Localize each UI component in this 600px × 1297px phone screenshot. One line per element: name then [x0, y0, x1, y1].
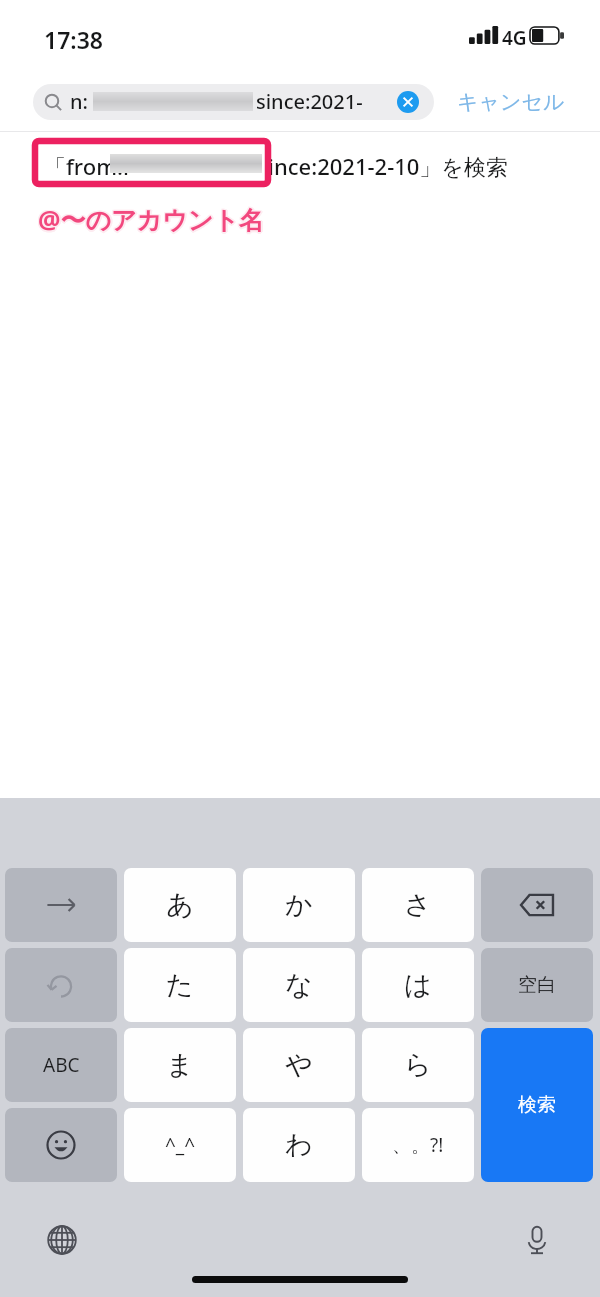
staticText: ら [404, 1048, 432, 1082]
button[interactable]: あ [124, 868, 236, 942]
staticText: @〜のアカウント名 [37, 201, 263, 235]
button[interactable]: ら [362, 1028, 474, 1102]
button[interactable]: ABC [5, 1028, 117, 1102]
staticText: た [166, 968, 194, 1002]
staticText: 検索 [518, 1093, 556, 1117]
button[interactable]: た [124, 948, 236, 1022]
staticText: @〜のアカウント名 [38, 202, 264, 236]
button[interactable]: 「from:r [0, 132, 600, 194]
button[interactable]: ま [124, 1028, 236, 1102]
staticText: @〜のアカウント名 [39, 203, 265, 237]
staticText: @〜のアカウント名 [38, 201, 264, 235]
button[interactable]: Delete [481, 868, 593, 942]
button[interactable]: Undo [5, 948, 117, 1022]
staticText: since:2021- [256, 88, 363, 115]
button[interactable]: か [243, 868, 355, 942]
staticText: @〜のアカウント名 [40, 202, 266, 236]
button[interactable]: キャンセル [445, 84, 585, 120]
staticText: 4G [502, 25, 527, 51]
staticText: @〜のアカウント名 [39, 201, 265, 235]
staticText: か [285, 888, 313, 922]
button[interactable]: 検索 [481, 1028, 593, 1182]
button[interactable]: Clear text [397, 91, 419, 113]
staticText: ince:2021-2-10」を検索 [268, 151, 508, 181]
button[interactable]: 空白 [481, 948, 593, 1022]
button[interactable]: Emoji [5, 1108, 117, 1182]
button[interactable]: な [243, 948, 355, 1022]
staticText: あ [166, 888, 194, 922]
button[interactable]: 、。?! [362, 1108, 474, 1182]
staticText: 17:38 [44, 24, 103, 55]
button[interactable]: さ [362, 868, 474, 942]
staticText: ABC [43, 1052, 80, 1078]
button[interactable]: ^_^ [124, 1108, 236, 1182]
staticText: 、。?! [392, 1132, 444, 1158]
staticText: な [285, 968, 313, 1002]
staticText: @〜のアカウント名 [37, 203, 263, 237]
button[interactable]: わ [243, 1108, 355, 1182]
staticText: わ [285, 1128, 313, 1162]
staticText: ^_^ [165, 1132, 196, 1158]
button[interactable]: Change keyboard [34, 1212, 90, 1268]
button[interactable]: n: [33, 84, 434, 120]
staticText: @〜のアカウント名 [37, 202, 263, 236]
staticText: ま [166, 1048, 194, 1082]
staticText: さ [404, 888, 432, 922]
staticText: 空白 [518, 973, 556, 997]
staticText: @〜のアカウント名 [38, 204, 264, 238]
staticText: は [404, 968, 432, 1002]
button[interactable]: Next candidate [5, 868, 117, 942]
staticText: n: [70, 88, 88, 115]
button[interactable]: や [243, 1028, 355, 1102]
staticText: 「from:r [44, 151, 133, 181]
staticText: キャンセル [457, 89, 565, 115]
staticText: や [285, 1048, 313, 1082]
button[interactable]: は [362, 948, 474, 1022]
button[interactable]: Voice input [509, 1212, 565, 1268]
